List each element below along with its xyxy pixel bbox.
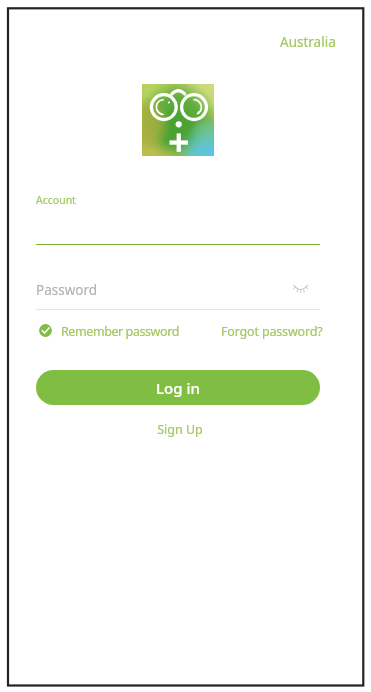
button[interactable]: Forgot password? — [205, 320, 322, 342]
button[interactable]: Show password — [285, 277, 317, 303]
staticText: Password — [36, 281, 98, 299]
button[interactable]: Password — [36, 276, 321, 310]
staticText: Remember password — [61, 323, 179, 340]
button[interactable]: Remember password — [36, 320, 178, 342]
button[interactable]: Sign Up — [142, 417, 217, 441]
button[interactable]: Account — [36, 187, 321, 245]
staticText: Account — [36, 193, 76, 207]
staticText: Sign Up — [157, 421, 203, 438]
staticText: Forgot password? — [221, 323, 323, 340]
button[interactable]: Log in — [36, 370, 320, 405]
button[interactable]: Australia — [269, 31, 336, 53]
staticText: Australia — [280, 33, 336, 51]
staticText: Log in — [156, 378, 200, 398]
